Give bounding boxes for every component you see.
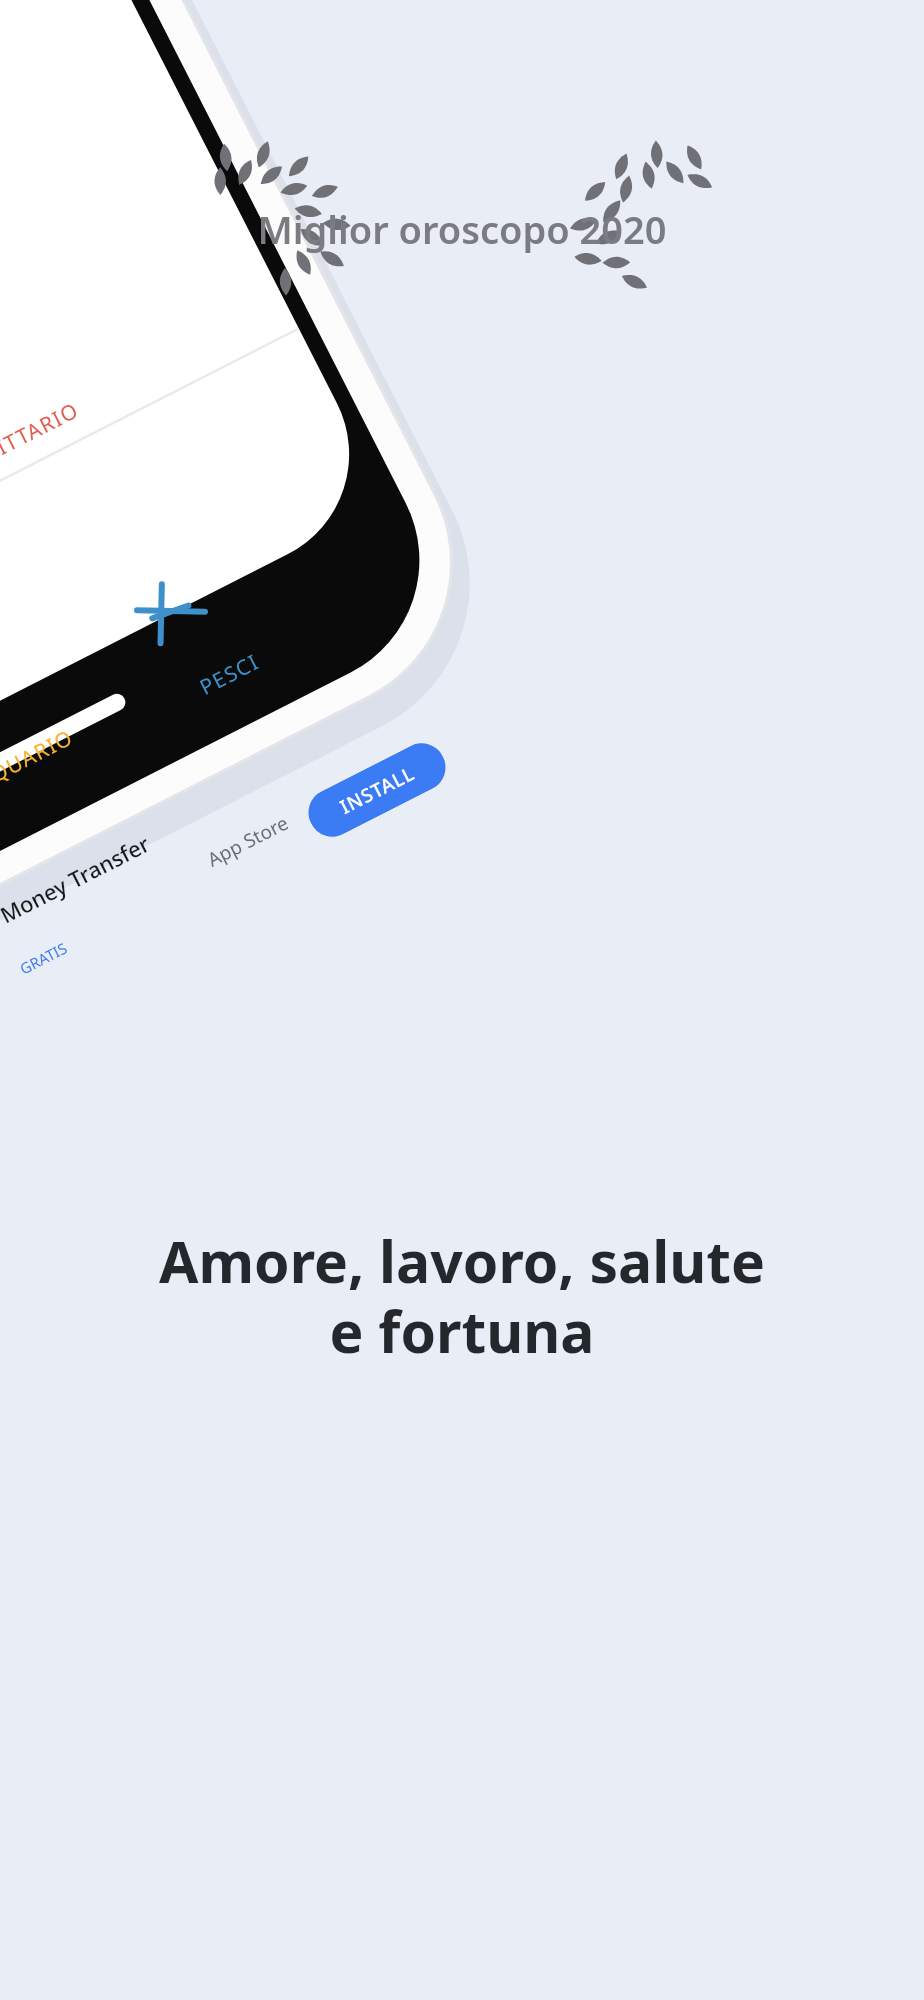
button[interactable]: SAGITTARIO [0, 395, 84, 482]
staticText: GRATIS [16, 937, 71, 978]
staticText: SAGITTARIO [0, 395, 84, 482]
staticText: n Money Transfer [0, 828, 155, 938]
button[interactable]: ACQUARIO [0, 723, 78, 802]
staticText: INSTALL [335, 760, 419, 820]
button[interactable]: INSTALL [300, 735, 454, 845]
button[interactable]: App Store [203, 809, 293, 872]
staticText: ACQUARIO [0, 723, 78, 802]
button[interactable]: PESCI [195, 647, 264, 702]
staticText: PESCI [195, 647, 264, 702]
button[interactable]: n Money Transfer [0, 828, 155, 938]
button[interactable]: Pesci [129, 569, 213, 653]
staticText: Miglior oroscopo 2020 [257, 203, 667, 255]
staticText: Amore, lavoro, salute e fortuna [0, 1222, 924, 1370]
staticText: App Store [203, 809, 293, 872]
